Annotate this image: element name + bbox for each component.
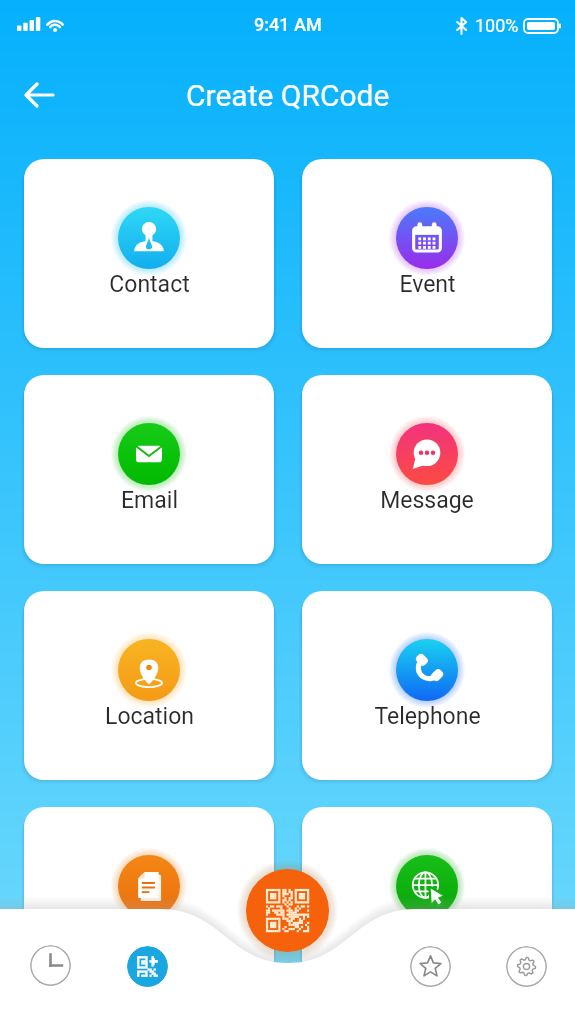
button[interactable]: Website [302, 807, 552, 996]
staticText: Create QRCode [186, 78, 390, 113]
staticText: Email [121, 487, 178, 514]
button[interactable]: Create QR [127, 946, 168, 987]
button[interactable]: Settings [506, 946, 547, 987]
staticText: Contact [109, 271, 190, 298]
button[interactable]: Location [24, 591, 274, 780]
button[interactable]: Telephone [302, 591, 552, 780]
button[interactable]: Recent [30, 945, 71, 986]
staticText: Event [399, 271, 456, 298]
button[interactable]: Event [302, 159, 552, 348]
button[interactable]: Scan QR code [246, 869, 329, 952]
button[interactable]: Back [16, 72, 64, 120]
staticText: Message [380, 487, 474, 514]
staticText: Location [105, 703, 194, 730]
button[interactable]: Text [24, 807, 274, 996]
staticText: Telephone [374, 703, 481, 730]
button[interactable]: Favorites [410, 946, 451, 987]
button[interactable]: Message [302, 375, 552, 564]
button[interactable]: Email [24, 375, 274, 564]
button[interactable]: Contact [24, 159, 274, 348]
staticText: 100% [475, 15, 519, 36]
staticText: 9:41 AM [254, 14, 322, 35]
